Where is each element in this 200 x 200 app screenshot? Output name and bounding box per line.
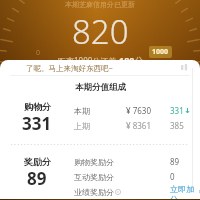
staticText: 0 (36, 48, 41, 58)
staticText: ¥ 7630 (126, 105, 151, 116)
staticText: 89 (170, 156, 180, 167)
staticText: 距离1000分还差 (58, 55, 119, 66)
staticText: 上期 (74, 121, 90, 131)
staticText: 奖励分 (24, 156, 51, 167)
staticText: 购物奖励分 (74, 157, 114, 167)
staticText: 0 (170, 171, 175, 182)
staticText: 了呢。马上来淘好东西吧~ (26, 63, 113, 73)
staticText: 385 (170, 120, 184, 131)
button[interactable]: 奖励分 (0, 154, 200, 199)
button[interactable]: 购物奖励分 (74, 154, 200, 169)
staticText: 331 (170, 105, 184, 116)
staticText: 购物分 (24, 101, 51, 112)
staticText: 本期分值组成 (75, 82, 126, 93)
staticText: 本期 (74, 106, 90, 116)
button[interactable]: 互动奖励分 (74, 169, 200, 184)
staticText: ¥ 8361 (126, 120, 151, 131)
staticText: 331 (22, 112, 52, 135)
staticText: 180 (119, 54, 135, 66)
other: 关闭 (181, 63, 190, 72)
staticText: 分 (135, 55, 143, 65)
button[interactable]: 业绩奖励分 (74, 184, 200, 199)
staticText: 820 (72, 9, 129, 54)
staticText: 互动奖励分 (74, 172, 114, 182)
staticText: 业绩奖励分 (74, 187, 114, 197)
button[interactable]: 了呢。马上来淘好东西吧~ (0, 60, 200, 75)
staticText: 89 (27, 167, 47, 190)
staticText: 1000 (152, 47, 169, 57)
button[interactable]: 购物分 (0, 101, 200, 135)
staticText: 本期芝麻信用分已更新 (65, 0, 135, 9)
staticText: 立即加分 (170, 184, 200, 199)
